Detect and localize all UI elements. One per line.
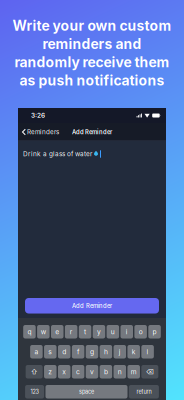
staticText: 123	[31, 388, 39, 395]
staticText: i	[126, 328, 128, 336]
button[interactable]: z	[44, 365, 56, 378]
button[interactable]: Add Reminder	[25, 298, 159, 313]
staticText: s	[48, 348, 52, 356]
staticText: l	[147, 348, 149, 356]
staticText: w	[41, 328, 46, 336]
button[interactable]: k	[127, 345, 140, 358]
staticText: o	[139, 328, 143, 336]
staticText: u	[111, 328, 115, 336]
staticText: z	[48, 368, 52, 376]
staticText: y	[97, 328, 101, 336]
button[interactable]: g	[86, 345, 98, 358]
staticText: e	[55, 328, 59, 336]
button[interactable]: l	[141, 345, 154, 358]
button[interactable]: ⌫	[141, 365, 158, 378]
button[interactable]: a	[30, 345, 43, 358]
button[interactable]: u	[107, 325, 119, 338]
staticText: f	[77, 348, 79, 356]
staticText: a	[34, 348, 38, 356]
button[interactable]: o	[134, 325, 147, 338]
button[interactable]: d	[58, 345, 70, 358]
button[interactable]: space	[45, 385, 127, 398]
staticText: k	[132, 348, 136, 356]
staticText: m	[131, 368, 137, 376]
staticText: return	[136, 388, 151, 395]
button[interactable]: s	[44, 345, 56, 358]
button[interactable]: c	[72, 365, 84, 378]
button[interactable]: j	[114, 345, 126, 358]
staticText: p	[153, 328, 157, 336]
button[interactable]: return	[129, 385, 159, 398]
staticText: b	[104, 368, 108, 376]
button[interactable]: x	[58, 365, 70, 378]
button[interactable]: b	[100, 365, 112, 378]
staticText: g	[90, 348, 94, 356]
button[interactable]: q	[23, 325, 36, 338]
staticText: Write your own custom	[12, 17, 171, 34]
staticText: c	[76, 368, 80, 376]
button[interactable]: Reminders	[22, 125, 59, 139]
staticText: space	[79, 388, 94, 395]
button[interactable]: 123	[25, 385, 44, 398]
staticText: Drink a glass of water	[23, 150, 94, 158]
staticText: 3:26	[31, 112, 45, 119]
staticText: ⌫	[146, 368, 154, 376]
staticText: q	[27, 328, 31, 336]
staticText: h	[104, 348, 108, 356]
staticText: Add Reminder	[72, 302, 112, 309]
staticText: Add Reminder	[72, 128, 112, 136]
button[interactable]: t	[79, 325, 91, 338]
staticText: as push notifications	[19, 72, 164, 89]
button[interactable]: y	[93, 325, 105, 338]
button[interactable]: ⇧	[26, 365, 43, 378]
button[interactable]: r	[65, 325, 77, 338]
button[interactable]: f	[72, 345, 84, 358]
staticText: Reminders	[27, 128, 59, 136]
button[interactable]: p	[148, 325, 161, 338]
button[interactable]: e	[51, 325, 63, 338]
staticText: j	[119, 348, 121, 356]
button[interactable]: w	[37, 325, 50, 338]
staticText: reminders and	[42, 35, 141, 52]
staticText: t	[84, 328, 86, 336]
button[interactable]: i	[120, 325, 133, 338]
button[interactable]: m	[127, 365, 140, 378]
staticText: x	[62, 368, 66, 376]
staticText: v	[90, 368, 94, 376]
button[interactable]: n	[113, 365, 126, 378]
staticText: n	[118, 368, 122, 376]
button[interactable]: v	[86, 365, 98, 378]
staticText: r	[70, 328, 73, 336]
staticText: ⇧	[31, 368, 38, 376]
button[interactable]: h	[100, 345, 112, 358]
staticText: d	[62, 348, 66, 356]
staticText: randomly receive them	[14, 54, 169, 71]
